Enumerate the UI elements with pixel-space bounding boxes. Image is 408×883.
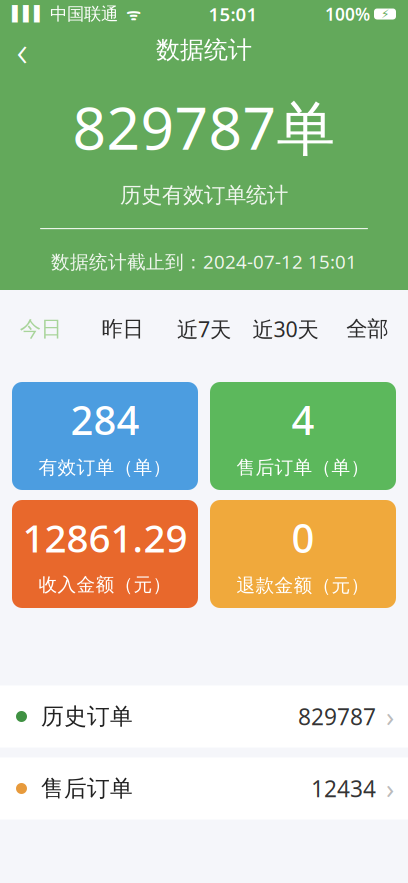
staticText: 0 xyxy=(291,511,314,564)
button[interactable]: 4 xyxy=(210,382,396,490)
button[interactable]: 历史订单 xyxy=(0,685,408,747)
staticText: 收入金额（元） xyxy=(38,573,171,596)
staticText: 历史有效订单统计 xyxy=(120,182,288,208)
staticText: 近30天 xyxy=(253,315,319,343)
staticText: 12434 xyxy=(311,773,376,803)
button[interactable]: 近7天 xyxy=(163,290,245,368)
staticText: › xyxy=(386,699,394,734)
staticText: ‹ xyxy=(16,22,27,78)
staticText: 100% xyxy=(325,2,370,25)
button[interactable]: 近30天 xyxy=(245,290,326,368)
button[interactable]: 今日 xyxy=(0,290,82,368)
staticText: › xyxy=(386,771,394,806)
staticText: 今日 xyxy=(20,316,62,342)
staticText: 有效订单（单） xyxy=(38,456,171,479)
staticText: 284 xyxy=(70,393,139,446)
staticText: 829787 xyxy=(298,701,376,731)
staticText: 退款金额（元） xyxy=(236,574,369,597)
staticText: 15:01 xyxy=(208,2,257,26)
staticText: 数据统计截止到：2024-07-12 15:01 xyxy=(51,249,357,274)
staticText: 中国联通 xyxy=(45,3,118,25)
staticText: 历史订单 xyxy=(41,703,133,730)
staticText: 近7天 xyxy=(177,315,231,343)
button[interactable]: 284 xyxy=(12,382,198,490)
staticText: 数据统计 xyxy=(156,35,252,65)
button[interactable]: 售后订单 xyxy=(0,757,408,819)
staticText: 售后订单（单） xyxy=(236,456,369,479)
staticText: 售后订单 xyxy=(41,775,133,802)
staticText: 829787单 xyxy=(72,88,335,166)
staticText: 昨日 xyxy=(101,316,143,342)
staticText: 12861.29 xyxy=(22,512,187,563)
button[interactable]: 全部 xyxy=(326,290,408,368)
staticText: ⚡︎ xyxy=(381,7,389,21)
button[interactable]: 昨日 xyxy=(82,290,163,368)
button[interactable]: 12861.29 xyxy=(12,500,198,608)
staticText: 4 xyxy=(291,393,314,446)
button[interactable]: 0 xyxy=(210,500,396,608)
button[interactable]: 返回 xyxy=(0,28,44,72)
staticText: 全部 xyxy=(346,316,388,342)
staticText: ▌▌▌ xyxy=(12,6,45,22)
staticText: ᯤ xyxy=(118,3,141,25)
